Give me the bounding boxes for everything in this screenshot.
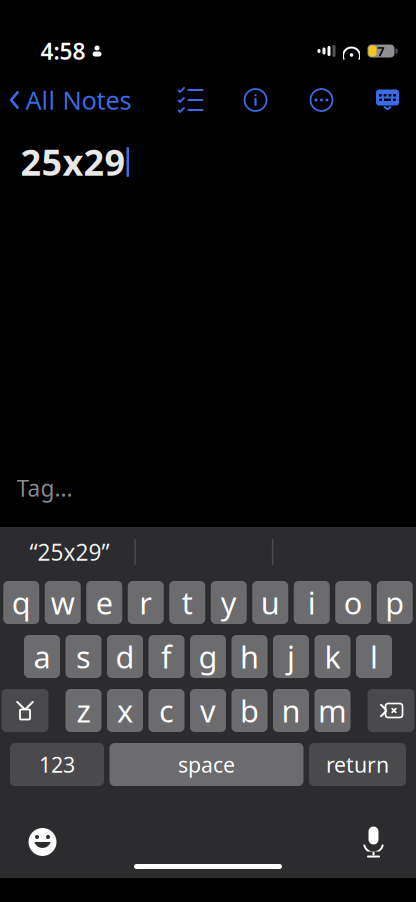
staticText: “25x29” xyxy=(29,537,109,567)
staticText: b xyxy=(240,690,259,731)
button[interactable]: All Notes xyxy=(0,77,131,123)
button[interactable]: b xyxy=(231,689,267,732)
button[interactable]: i xyxy=(294,581,330,624)
staticText: 7 xyxy=(377,42,385,60)
staticText: u xyxy=(261,582,280,623)
staticText: t xyxy=(182,582,193,623)
button[interactable]: s xyxy=(65,635,101,678)
button[interactable]: Dictation xyxy=(351,816,395,868)
button[interactable]: f xyxy=(148,635,184,678)
button[interactable]: p xyxy=(377,581,413,624)
button[interactable]: More xyxy=(301,80,341,120)
staticText: j xyxy=(287,636,295,677)
button[interactable]: d xyxy=(107,635,143,678)
button[interactable]: z xyxy=(65,689,101,732)
button[interactable]: Info xyxy=(235,80,275,120)
button[interactable]: o xyxy=(335,581,371,624)
staticText: z xyxy=(76,690,90,731)
staticText: g xyxy=(198,636,217,677)
button[interactable]: a xyxy=(24,635,60,678)
button[interactable]: n xyxy=(273,689,309,732)
staticText: 25x29 xyxy=(20,138,125,186)
button[interactable]: e xyxy=(86,581,122,624)
staticText: r xyxy=(139,582,152,623)
staticText: o xyxy=(344,582,363,623)
staticText: a xyxy=(33,636,50,677)
button[interactable]: space xyxy=(109,743,303,786)
staticText: y xyxy=(221,582,237,623)
staticText: m xyxy=(318,690,347,731)
staticText: x xyxy=(117,690,133,731)
button[interactable]: w xyxy=(45,581,81,624)
button[interactable]: Delete xyxy=(367,689,414,732)
staticText: p xyxy=(385,582,404,623)
button[interactable]: g xyxy=(190,635,226,678)
staticText: s xyxy=(76,636,91,677)
staticText: q xyxy=(12,582,31,623)
button[interactable]: k xyxy=(314,635,350,678)
button[interactable]: v xyxy=(190,689,226,732)
staticText: l xyxy=(370,636,378,677)
button[interactable]: 123 xyxy=(10,743,104,786)
staticText: w xyxy=(51,582,75,623)
button[interactable]: Checklist xyxy=(171,82,209,118)
button[interactable]: h xyxy=(231,635,267,678)
button[interactable]: j xyxy=(273,635,309,678)
staticText: 123 xyxy=(39,750,75,779)
button[interactable]: q xyxy=(3,581,39,624)
button[interactable]: m xyxy=(314,689,350,732)
button[interactable]: Tag... xyxy=(0,467,72,509)
button[interactable]: return xyxy=(309,743,406,786)
button[interactable]: x xyxy=(107,689,143,732)
button[interactable]: “25x29” xyxy=(4,531,134,573)
staticText: i xyxy=(308,582,316,623)
button[interactable]: y xyxy=(211,581,247,624)
staticText: h xyxy=(240,636,259,677)
button[interactable]: t xyxy=(169,581,205,624)
staticText: d xyxy=(115,636,134,677)
button[interactable]: Shift xyxy=(1,689,48,732)
staticText: All Notes xyxy=(25,83,131,117)
staticText: v xyxy=(200,690,216,731)
button[interactable]: Hide Keyboard xyxy=(367,81,407,119)
button[interactable]: c xyxy=(148,689,184,732)
staticText: return xyxy=(326,750,389,779)
button[interactable]: u xyxy=(252,581,288,624)
staticText: space xyxy=(178,750,235,779)
staticText: f xyxy=(161,636,172,677)
staticText: n xyxy=(281,690,300,731)
staticText: e xyxy=(96,582,113,623)
button[interactable]: Emoji xyxy=(18,818,66,866)
staticText: 4:58 xyxy=(40,36,85,66)
button[interactable]: r xyxy=(128,581,164,624)
staticText: Tag... xyxy=(16,473,72,503)
staticText: c xyxy=(159,690,174,731)
button[interactable]: l xyxy=(356,635,392,678)
staticText: k xyxy=(324,636,340,677)
